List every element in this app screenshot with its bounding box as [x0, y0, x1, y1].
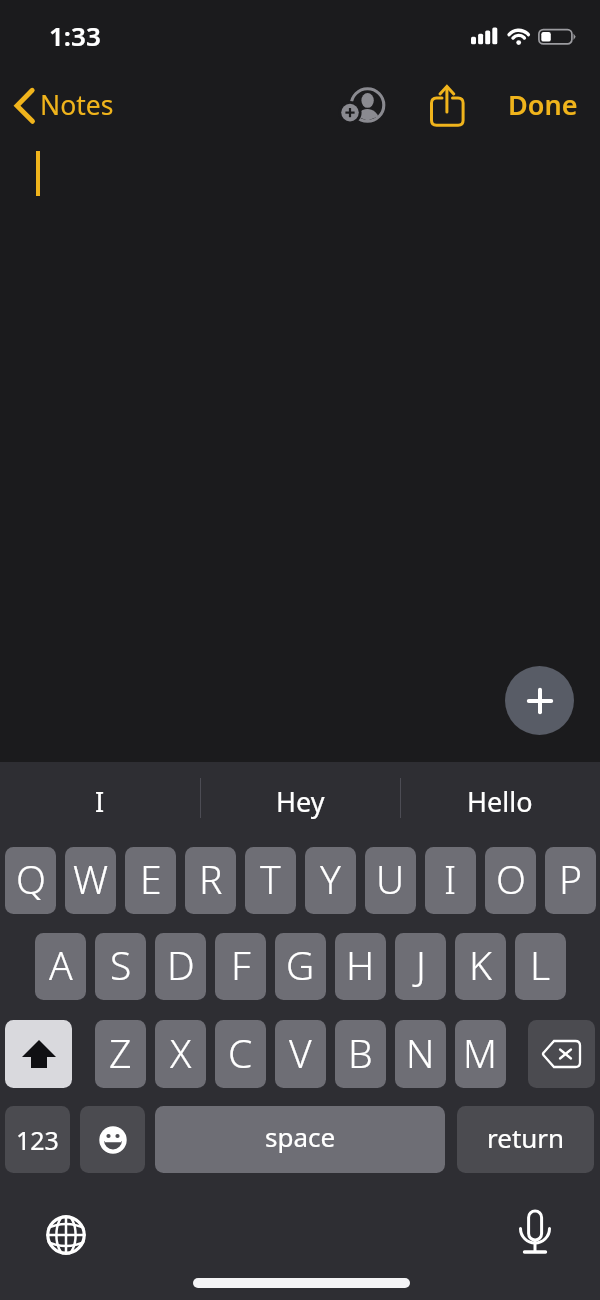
- button[interactable]: V: [275, 1020, 326, 1088]
- staticText: A: [49, 938, 73, 991]
- button[interactable]: L: [515, 933, 566, 1000]
- button[interactable]: N: [395, 1020, 446, 1088]
- button[interactable]: return: [457, 1106, 594, 1173]
- button[interactable]: O: [485, 847, 536, 914]
- staticText: S: [110, 938, 132, 991]
- staticText: 123: [16, 1123, 59, 1157]
- staticText: N: [406, 1026, 435, 1079]
- staticText: B: [348, 1026, 373, 1079]
- button[interactable]: Share: [419, 77, 469, 127]
- button[interactable]: J: [395, 933, 446, 1000]
- button[interactable]: Change keyboard: [42, 1211, 90, 1259]
- staticText: I: [95, 783, 105, 820]
- button[interactable]: Y: [305, 847, 356, 914]
- button[interactable]: H: [335, 933, 386, 1000]
- button[interactable]: R: [185, 847, 236, 914]
- button[interactable]: 123: [5, 1106, 70, 1173]
- staticText: Z: [109, 1026, 132, 1079]
- button[interactable]: Dictate: [511, 1208, 559, 1256]
- staticText: U: [376, 852, 405, 905]
- button[interactable]: Z: [95, 1020, 146, 1088]
- staticText: space: [265, 1119, 336, 1154]
- staticText: G: [286, 938, 315, 991]
- staticText: K: [469, 938, 492, 991]
- staticText: P: [559, 852, 582, 905]
- button[interactable]: Add attachment: [505, 666, 574, 735]
- staticText: F: [231, 938, 251, 991]
- button[interactable]: D: [155, 933, 206, 1000]
- staticText: Y: [320, 852, 341, 905]
- button[interactable]: Backspace: [528, 1020, 595, 1088]
- button[interactable]: space: [155, 1106, 445, 1173]
- staticText: V: [289, 1026, 312, 1079]
- staticText: D: [167, 938, 195, 991]
- button[interactable]: W: [65, 847, 116, 914]
- staticText: L: [530, 938, 551, 991]
- staticText: Q: [16, 852, 46, 905]
- staticText: R: [199, 852, 223, 905]
- button[interactable]: E: [125, 847, 176, 914]
- button[interactable]: M: [455, 1020, 506, 1088]
- staticText: C: [228, 1026, 253, 1079]
- button[interactable]: G: [275, 933, 326, 1000]
- staticText: Done: [508, 86, 578, 123]
- staticText: Notes: [40, 87, 114, 123]
- button[interactable]: Notes: [9, 86, 109, 126]
- staticText: O: [496, 852, 526, 905]
- button[interactable]: Add people: [334, 79, 390, 135]
- staticText: 1:33: [49, 18, 101, 53]
- button[interactable]: Done: [499, 80, 587, 128]
- button[interactable]: I: [425, 847, 476, 914]
- button[interactable]: A: [35, 933, 86, 1000]
- button[interactable]: T: [245, 847, 296, 914]
- button[interactable]: C: [215, 1020, 266, 1088]
- staticText: E: [140, 852, 162, 905]
- button[interactable]: Emoji: [80, 1106, 145, 1173]
- button[interactable]: Hey: [200, 764, 400, 839]
- button[interactable]: B: [335, 1020, 386, 1088]
- staticText: H: [346, 938, 375, 991]
- button[interactable]: X: [155, 1020, 206, 1088]
- staticText: Hello: [467, 783, 533, 820]
- button[interactable]: F: [215, 933, 266, 1000]
- button[interactable]: Shift: [5, 1020, 72, 1088]
- staticText: W: [73, 852, 109, 905]
- staticText: T: [260, 852, 281, 905]
- button[interactable]: S: [95, 933, 146, 1000]
- button[interactable]: K: [455, 933, 506, 1000]
- button[interactable]: U: [365, 847, 416, 914]
- staticText: J: [416, 938, 426, 991]
- button[interactable]: I: [0, 764, 200, 839]
- staticText: M: [463, 1026, 498, 1079]
- button[interactable]: Q: [5, 847, 56, 914]
- staticText: Hey: [276, 783, 325, 820]
- staticText: X: [170, 1026, 192, 1079]
- button[interactable]: P: [545, 847, 596, 914]
- staticText: I: [444, 852, 457, 905]
- button[interactable]: Hello: [400, 764, 600, 839]
- staticText: return: [487, 1120, 565, 1155]
